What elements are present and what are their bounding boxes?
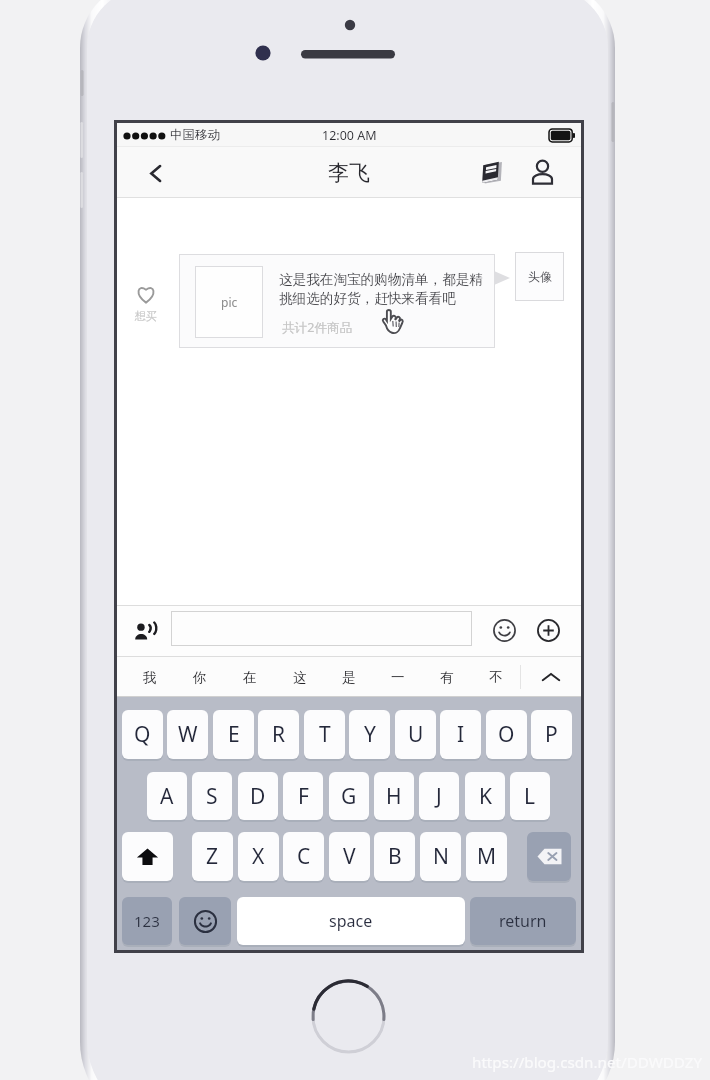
staticText: Y (364, 720, 376, 749)
button[interactable] (171, 611, 472, 646)
button[interactable]: E (213, 710, 254, 759)
staticText: S (206, 782, 218, 811)
staticText: 共计2件商品 (282, 319, 353, 336)
button[interactable]: O (486, 710, 527, 759)
button[interactable]: L (510, 772, 550, 820)
staticText: 有 (440, 669, 454, 686)
staticText: 12:00 AM (322, 127, 377, 144)
staticText: C (297, 842, 311, 871)
staticText: R (272, 720, 286, 749)
button[interactable]: Y (349, 710, 390, 759)
staticText: 不 (489, 669, 503, 686)
staticText: H (386, 782, 402, 811)
button[interactable]: J (419, 772, 459, 820)
button[interactable]: More options (534, 615, 563, 646)
button[interactable]: 有 (422, 657, 471, 697)
button[interactable]: U (395, 710, 436, 759)
button[interactable]: A (147, 772, 187, 820)
staticText: 这 (293, 669, 307, 686)
staticText: P (545, 720, 558, 749)
button[interactable]: S (192, 772, 232, 820)
staticText: F (298, 782, 309, 811)
button[interactable]: H (374, 772, 414, 820)
staticText: pic (221, 294, 238, 310)
button[interactable]: C (283, 832, 324, 881)
button[interactable]: W (167, 710, 208, 759)
staticText: D (250, 782, 266, 811)
button[interactable]: pic (179, 254, 495, 348)
button[interactable]: I (440, 710, 481, 759)
button[interactable]: B (374, 832, 415, 881)
staticText: B (388, 842, 402, 871)
button[interactable]: 头像 (515, 252, 564, 301)
button[interactable]: Back (138, 156, 172, 190)
staticText: T (319, 720, 331, 749)
staticText: Q (134, 720, 151, 749)
button[interactable]: F (283, 772, 323, 820)
button[interactable]: 在 (225, 657, 275, 697)
button[interactable]: 你 (175, 657, 225, 697)
staticText: I (457, 720, 465, 749)
staticText: Z (206, 842, 219, 871)
staticText: 我 (143, 669, 157, 686)
staticText: W (178, 720, 198, 749)
staticText: K (479, 782, 492, 811)
button[interactable]: K (465, 772, 505, 820)
button[interactable]: 这 (275, 657, 324, 697)
button[interactable]: V (329, 832, 370, 881)
staticText: https://blog.csdn.net/DDWDDZY (472, 1052, 703, 1073)
staticText: 李飞 (328, 160, 370, 186)
staticText: N (433, 842, 449, 871)
staticText: space (329, 910, 373, 932)
button[interactable]: 是 (324, 657, 373, 697)
button[interactable]: Backspace (527, 832, 571, 881)
staticText: 想买 (135, 309, 157, 323)
button[interactable]: Collapse keyboard (521, 657, 581, 697)
button[interactable]: 想买 (124, 284, 168, 323)
button[interactable]: G (329, 772, 369, 820)
button[interactable]: T (304, 710, 345, 759)
button[interactable]: Emoji (490, 615, 519, 646)
staticText: G (341, 782, 357, 811)
button[interactable]: Profile (525, 154, 560, 189)
button[interactable]: X (238, 832, 279, 881)
button[interactable]: P (531, 710, 572, 759)
button[interactable]: D (238, 772, 278, 820)
button[interactable]: Emoji keyboard (179, 897, 231, 945)
button[interactable]: Contacts book (473, 154, 508, 189)
staticText: A (160, 782, 174, 811)
staticText: 你 (193, 669, 207, 686)
staticText: O (498, 720, 515, 749)
button[interactable]: Z (192, 832, 233, 881)
button[interactable]: 不 (471, 657, 520, 697)
staticText: return (499, 910, 547, 932)
button[interactable]: space (237, 897, 465, 945)
button[interactable]: return (470, 897, 576, 945)
button[interactable]: Voice message (129, 615, 162, 646)
staticText: 是 (342, 669, 356, 686)
staticText: 这是我在淘宝的购物清单，都是精挑细选的好货，赶快来看看吧 (279, 271, 484, 307)
staticText: V (343, 842, 356, 871)
staticText: 头像 (528, 269, 552, 284)
staticText: U (408, 720, 424, 749)
button[interactable]: M (466, 832, 507, 881)
button[interactable]: 123 (122, 897, 172, 945)
staticText: 一 (391, 669, 405, 686)
staticText: 中国移动 (170, 127, 220, 143)
staticText: 123 (134, 911, 160, 931)
staticText: E (228, 720, 240, 749)
button[interactable]: 我 (125, 657, 175, 697)
button[interactable]: Shift (122, 832, 173, 881)
button[interactable]: Q (122, 710, 163, 759)
staticText: 在 (243, 669, 257, 686)
staticText: X (252, 842, 265, 871)
staticText: M (477, 842, 497, 871)
staticText: L (524, 782, 536, 811)
button[interactable]: N (420, 832, 461, 881)
button[interactable]: R (258, 710, 299, 759)
button[interactable]: 一 (373, 657, 422, 697)
staticText: J (436, 782, 442, 811)
